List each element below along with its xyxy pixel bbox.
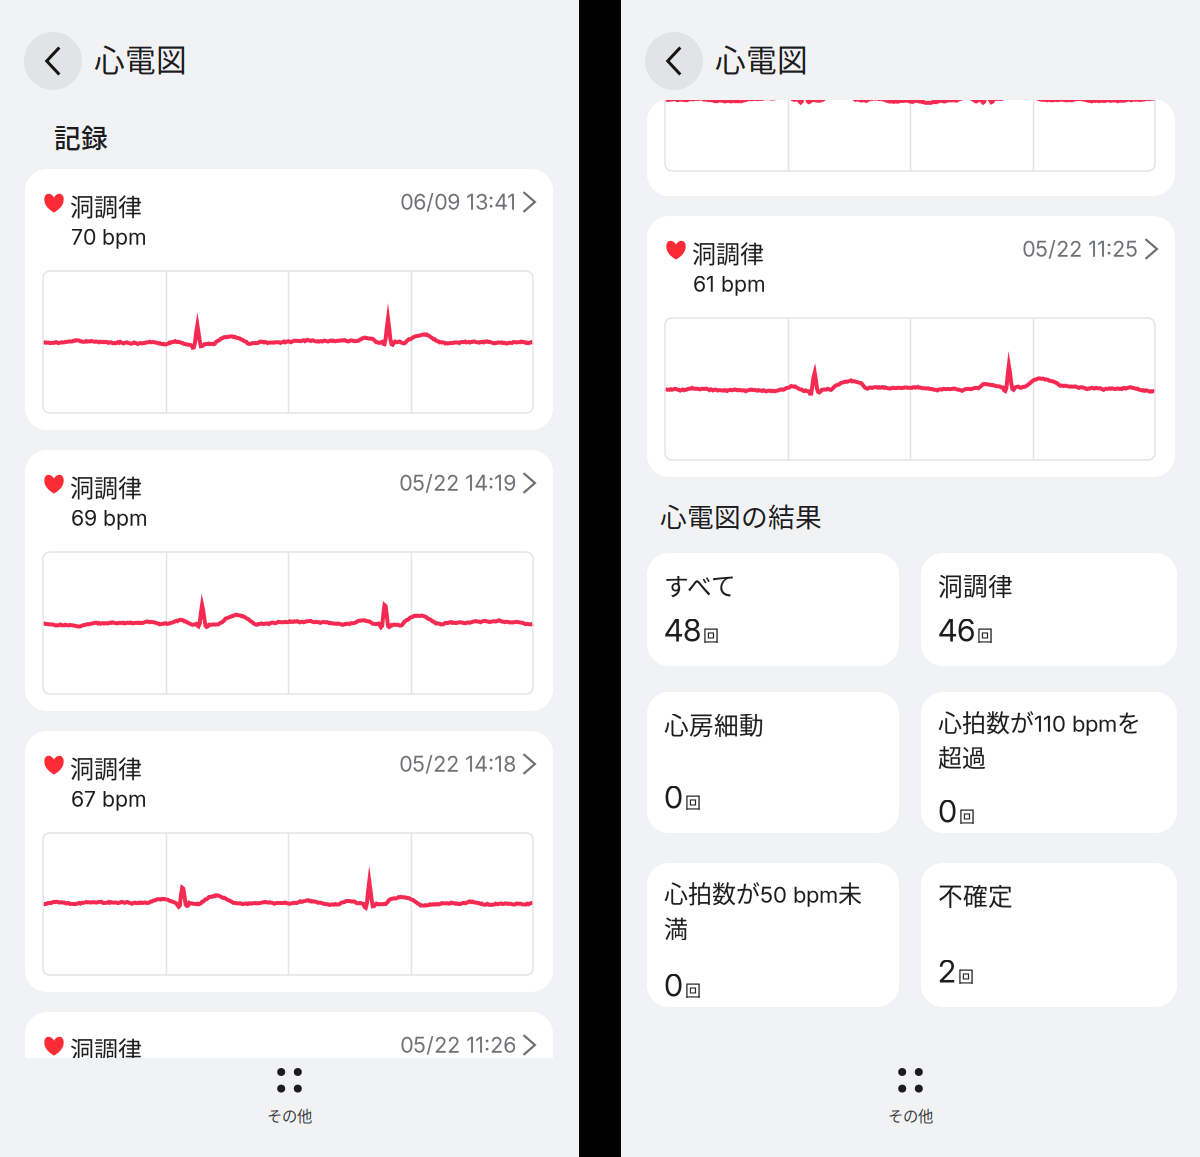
button[interactable]: 戻る [24,32,82,90]
staticText: 回 [958,964,974,987]
staticText: 67 bpm [71,786,147,812]
staticText: 超過 [938,739,986,774]
staticText: その他 [888,1104,933,1126]
staticText: 記録 [54,117,108,156]
staticText: 48 [664,612,701,649]
staticText: 0 [938,793,957,830]
staticText: 回 [685,790,701,813]
staticText: 不確定 [938,877,1013,913]
staticText: 心電図 [715,36,808,80]
staticText: 05/22 11:25 [1022,236,1138,262]
button[interactable]: 心房細動 [647,692,899,833]
staticText: 46 [938,612,975,649]
staticText: 回 [977,623,993,646]
button[interactable]: 洞調律 [25,169,553,430]
staticText: 0 [664,967,683,1004]
staticText: 05/22 14:18 [399,751,516,777]
button[interactable]: 洞調律 [647,216,1175,477]
staticText: 70 bpm [71,224,147,250]
button[interactable]: 不確定 [921,863,1177,1007]
staticText: 2 [938,953,956,990]
button[interactable]: 心拍数が [647,863,899,1007]
button[interactable]: 心拍数が [921,692,1177,833]
staticText: 50 bpm [760,881,838,908]
button[interactable]: その他 [621,1058,1200,1157]
staticText: 洞調律 [70,750,142,785]
staticText: すべて [664,567,736,603]
staticText: 未 [838,875,862,910]
staticText: 0 [664,779,683,816]
staticText: 05/22 11:26 [400,1032,516,1058]
staticText: 心電図の結果 [660,496,822,535]
staticText: 洞調律 [938,567,1013,603]
staticText: その他 [267,1104,312,1126]
staticText: 回 [959,804,975,827]
staticText: 心拍数が [664,875,760,910]
staticText: 回 [685,978,701,1001]
button[interactable]: 洞調律 [25,1012,553,1157]
staticText: 69 bpm [71,505,148,531]
staticText: 満 [664,910,688,945]
button[interactable]: その他 [0,1058,579,1157]
staticText: を [1117,704,1141,739]
staticText: 回 [703,623,719,646]
staticText: 心拍数が [938,704,1034,739]
staticText: 110 bpm [1034,710,1117,737]
button[interactable]: すべて [647,553,899,666]
staticText: 洞調律 [70,188,142,223]
button[interactable]: 洞調律 [25,450,553,711]
staticText: 06/09 13:41 [400,189,516,215]
staticText: 心房細動 [664,706,764,742]
staticText: 心電図 [94,36,187,80]
staticText: 洞調律 [70,469,142,504]
button[interactable]: 洞調律 [25,731,553,992]
staticText: 洞調律 [70,1031,142,1066]
button[interactable]: 洞調律 [921,553,1177,666]
staticText: 洞調律 [692,235,764,270]
staticText: 05/22 14:19 [399,470,516,496]
staticText: 61 bpm [693,271,766,297]
button[interactable]: 戻る [645,32,703,90]
